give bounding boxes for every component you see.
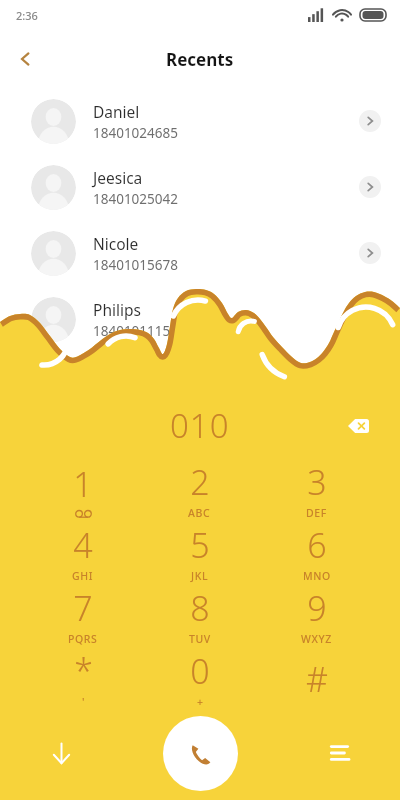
button[interactable]: Jeesica <box>0 154 400 220</box>
staticText: 4 <box>73 522 93 568</box>
staticText: + <box>197 695 204 709</box>
staticText: Recents <box>166 48 234 71</box>
button[interactable]: 0 <box>141 647 258 710</box>
staticText: 5 <box>190 522 210 568</box>
staticText: 18401025042 <box>93 190 178 208</box>
button[interactable]: Hide keypad <box>40 732 82 774</box>
staticText: MNO <box>303 569 331 583</box>
button[interactable]: Menu <box>318 732 360 774</box>
button[interactable]: Call <box>163 716 238 791</box>
button[interactable]: 3 <box>258 458 375 521</box>
staticText: 6 <box>307 522 327 568</box>
staticText: PQRS <box>68 632 98 646</box>
staticText: 3 <box>307 459 327 505</box>
staticText: JKL <box>191 569 209 583</box>
staticText: 18401024685 <box>93 124 178 142</box>
button[interactable]: Philips <box>0 286 400 352</box>
staticText: 010 <box>170 403 230 448</box>
button[interactable]: 5 <box>141 521 258 584</box>
staticText: Daniel <box>93 101 140 122</box>
button[interactable]: Daniel <box>0 88 400 154</box>
button[interactable]: Details <box>359 176 381 198</box>
staticText: 7 <box>73 585 93 631</box>
staticText: ABC <box>188 506 211 520</box>
button[interactable]: 6 <box>258 521 375 584</box>
button[interactable]: 9 <box>258 584 375 647</box>
button[interactable]: Details <box>359 308 381 330</box>
staticText: Jeesica <box>93 167 143 188</box>
button[interactable]: Back <box>6 39 46 79</box>
staticText: ' <box>82 695 86 709</box>
staticText: DEF <box>306 506 327 520</box>
button[interactable]: Nicole <box>0 220 400 286</box>
button[interactable]: Backspace <box>337 405 379 447</box>
button[interactable]: 8 <box>141 584 258 647</box>
staticText: 18401011158 <box>93 322 178 340</box>
button[interactable]: * <box>25 647 141 710</box>
button[interactable]: 4 <box>25 521 141 584</box>
staticText: 18401015678 <box>93 256 178 274</box>
staticText: 0 <box>190 648 210 694</box>
staticText: Philips <box>93 299 141 320</box>
staticText: GHI <box>72 569 94 583</box>
staticText: 2:36 <box>16 8 38 23</box>
button[interactable]: Details <box>359 242 381 264</box>
staticText: 2 <box>190 459 210 505</box>
staticText: 1 <box>73 461 93 507</box>
staticText: # <box>306 656 328 702</box>
button[interactable]: Details <box>359 110 381 132</box>
button[interactable]: 1 <box>25 458 141 521</box>
staticText: 9 <box>307 585 327 631</box>
staticText: Nicole <box>93 233 139 254</box>
staticText: * <box>74 648 93 694</box>
staticText: TUV <box>189 632 211 646</box>
staticText: 8 <box>190 585 210 631</box>
button[interactable]: 2 <box>141 458 258 521</box>
staticText: WXYZ <box>301 632 332 646</box>
button[interactable]: # <box>258 647 375 710</box>
button[interactable]: 7 <box>25 584 141 647</box>
